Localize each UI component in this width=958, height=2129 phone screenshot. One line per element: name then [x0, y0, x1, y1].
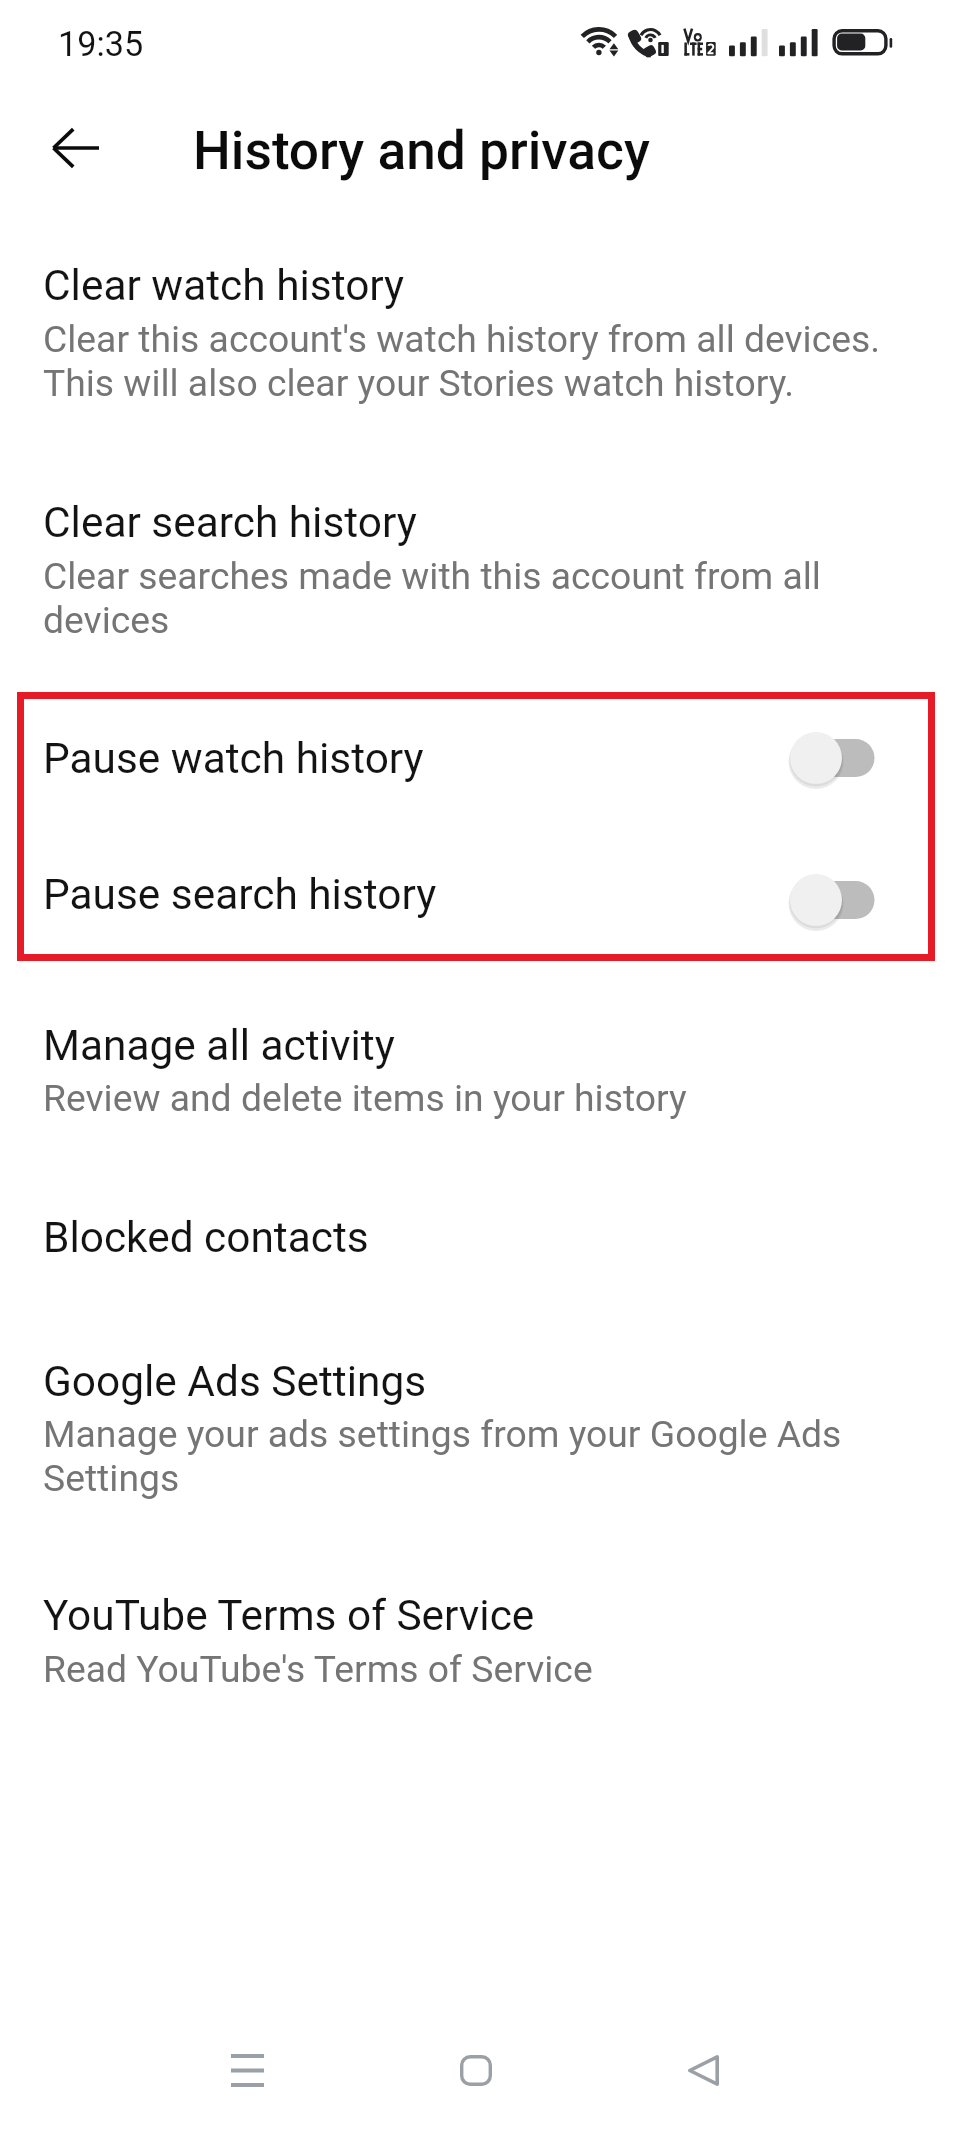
staticText: Blocked contacts — [43, 1213, 369, 1263]
staticText: 19:35 — [58, 24, 144, 64]
button[interactable]: Clear watch history — [0, 232, 958, 400]
staticText: Read YouTube's Terms of Service — [43, 1647, 593, 1691]
button[interactable]: Back — [31, 103, 121, 193]
button[interactable]: Recent apps — [187, 2010, 307, 2129]
staticText: Manage all activity — [43, 1021, 395, 1071]
staticText: History and privacy — [193, 120, 650, 182]
button[interactable]: Pause watch history — [0, 692, 958, 828]
staticText: Pause search history — [43, 870, 437, 920]
button[interactable]: Pause search history — [0, 828, 958, 962]
staticText: Manage your ads settings from your Googl… — [43, 1412, 842, 1500]
button[interactable]: Back — [643, 2010, 763, 2129]
button[interactable]: Clear search history — [0, 470, 958, 638]
staticText: Clear searches made with this account fr… — [43, 554, 821, 642]
staticText: Pause watch history — [43, 734, 424, 784]
button[interactable]: Home — [416, 2010, 536, 2129]
staticText: Google Ads Settings — [43, 1357, 427, 1407]
staticText: Clear watch history — [43, 261, 405, 311]
staticText: YouTube Terms of Service — [43, 1591, 535, 1641]
staticText: Clear search history — [43, 498, 417, 548]
button[interactable]: Blocked contacts — [0, 1185, 958, 1310]
staticText: Review and delete items in your history — [43, 1076, 687, 1120]
button[interactable]: Google Ads Settings — [0, 1328, 958, 1496]
button[interactable]: Manage all activity — [0, 992, 958, 1160]
staticText: Clear this account's watch history from … — [43, 317, 881, 405]
button[interactable]: YouTube Terms of Service — [0, 1563, 958, 1690]
